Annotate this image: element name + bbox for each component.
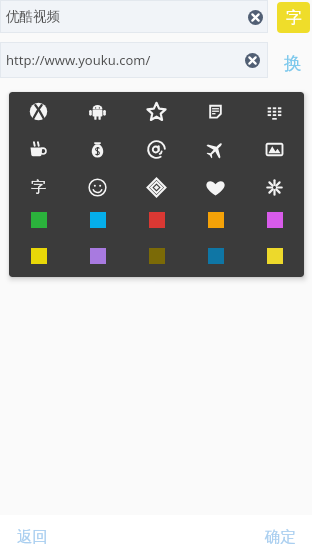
button[interactable]: Sparkle — [245, 168, 304, 206]
button[interactable]: Colour swatch — [186, 212, 245, 228]
button[interactable]: Heart — [186, 168, 245, 206]
button[interactable]: 确定 — [265, 527, 296, 544]
button[interactable]: Star — [127, 92, 186, 130]
staticText: 换 — [284, 52, 302, 74]
button[interactable]: Diamond — [127, 168, 186, 206]
button[interactable]: Note — [186, 92, 245, 130]
button[interactable]: Colour swatch — [245, 248, 304, 264]
staticText: 确定 — [265, 527, 296, 544]
button[interactable]: 优酷视频 — [0, 0, 268, 33]
button[interactable]: 返回 — [17, 527, 48, 544]
staticText: 返回 — [17, 527, 48, 544]
button[interactable]: Colour swatch — [68, 248, 127, 264]
button[interactable]: http://www.youku.com/ — [0, 42, 268, 78]
button[interactable]: Colour swatch — [9, 212, 68, 228]
staticText: 字 — [31, 178, 46, 197]
button[interactable]: Keyboard — [245, 92, 304, 130]
button[interactable]: Text — [9, 168, 68, 206]
button[interactable]: Coffee — [9, 130, 68, 168]
button[interactable]: Clear title — [245, 7, 266, 28]
button[interactable]: Android — [68, 92, 127, 130]
button[interactable]: Colour swatch — [127, 248, 186, 264]
button[interactable]: Emoji — [68, 168, 127, 206]
staticText: 字 — [286, 8, 302, 28]
button[interactable]: Colour swatch — [127, 212, 186, 228]
button[interactable]: Colour swatch — [9, 248, 68, 264]
button[interactable]: Money — [68, 130, 127, 168]
staticText: http://www.youku.com/ — [6, 51, 151, 69]
button[interactable]: 换 — [276, 47, 309, 78]
button[interactable]: Colour swatch — [68, 212, 127, 228]
button[interactable]: Xbox — [9, 92, 68, 130]
button[interactable]: Image — [245, 130, 304, 168]
button[interactable]: Email — [127, 130, 186, 168]
button[interactable]: Clear url — [242, 50, 263, 71]
button[interactable]: Colour swatch — [186, 248, 245, 264]
staticText: 优酷视频 — [6, 8, 60, 25]
button[interactable]: 字 — [277, 2, 310, 33]
button[interactable]: Colour swatch — [245, 212, 304, 228]
button[interactable]: Flight — [186, 130, 245, 168]
